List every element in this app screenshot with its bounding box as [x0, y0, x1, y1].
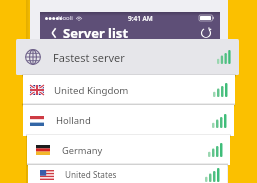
button[interactable]: United States: [28, 165, 227, 183]
button[interactable]: Holland: [23, 105, 234, 136]
staticText: Server list: [63, 24, 129, 41]
staticText: Hooli: [58, 14, 73, 22]
staticText: United Kingdom: [54, 84, 129, 97]
button[interactable]: Back: [47, 27, 59, 39]
button[interactable]: Refresh: [200, 27, 212, 39]
staticText: Holland: [56, 114, 91, 127]
button[interactable]: Germany: [27, 135, 230, 165]
button[interactable]: United Kingdom: [23, 75, 235, 105]
staticText: Fastest server: [53, 50, 125, 65]
staticText: United States: [65, 169, 117, 180]
staticText: 9:41 AM: [128, 14, 153, 23]
button[interactable]: Fastest server: [16, 39, 239, 75]
staticText: Germany: [62, 144, 103, 157]
